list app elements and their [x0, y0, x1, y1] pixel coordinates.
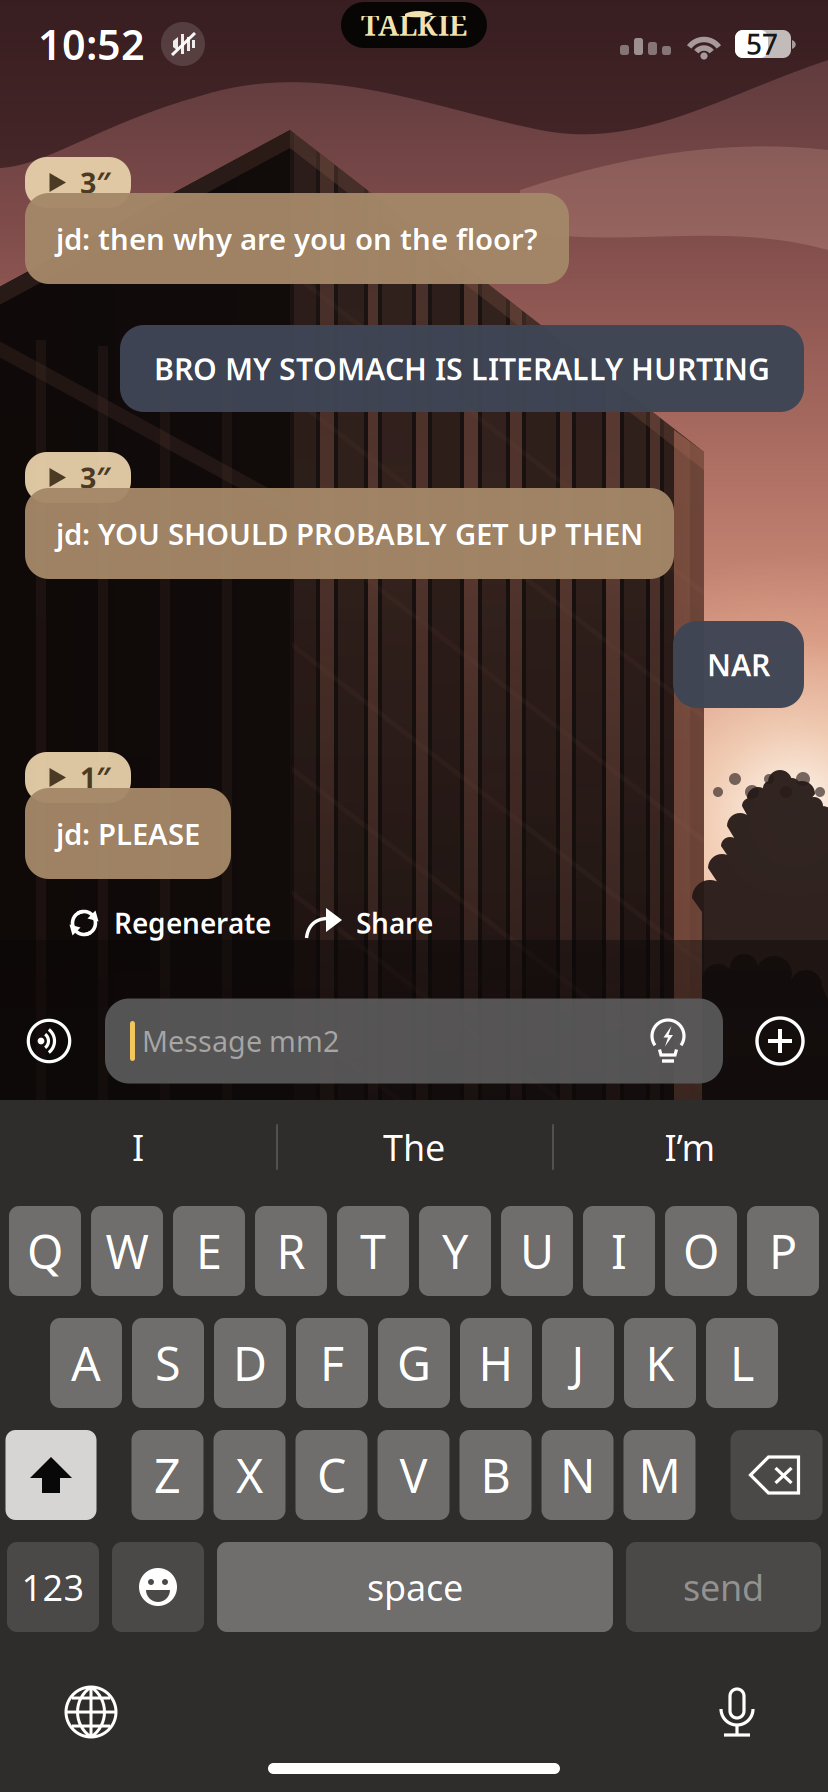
staticText: J: [571, 1332, 584, 1394]
button[interactable]: Shift: [5, 1430, 96, 1520]
button[interactable]: F: [296, 1318, 368, 1408]
button[interactable]: Y: [419, 1206, 491, 1296]
button[interactable]: Voice message: [25, 1017, 73, 1065]
staticText: D: [233, 1332, 267, 1394]
button[interactable]: Delete: [730, 1430, 822, 1520]
button[interactable]: C: [295, 1430, 367, 1520]
button[interactable]: H: [460, 1318, 532, 1408]
staticText: U: [520, 1220, 554, 1282]
staticText: Z: [154, 1444, 181, 1506]
button[interactable]: jd: PLEASE: [25, 788, 231, 879]
staticText: The: [383, 1123, 445, 1171]
button[interactable]: X: [213, 1430, 285, 1520]
staticText: NAR: [707, 644, 770, 685]
staticText: 3″: [80, 458, 111, 497]
button[interactable]: P: [747, 1206, 819, 1296]
button[interactable]: Regenerate: [66, 904, 271, 942]
staticText: B: [480, 1444, 510, 1506]
button[interactable]: Inspiration: [648, 1018, 688, 1064]
button[interactable]: T: [337, 1206, 409, 1296]
button[interactable]: L: [706, 1318, 778, 1408]
button[interactable]: U: [501, 1206, 573, 1296]
button[interactable]: I’m: [552, 1100, 828, 1194]
staticText: send: [683, 1563, 764, 1611]
staticText: Message mm2: [142, 1022, 339, 1060]
button[interactable]: G: [378, 1318, 450, 1408]
button[interactable]: BRO MY STOMACH IS LITERALLY HURTING: [120, 325, 804, 412]
staticText: jd: then why are you on the floor?: [56, 219, 538, 258]
staticText: N: [560, 1444, 595, 1506]
staticText: G: [397, 1332, 431, 1394]
staticText: I’m: [664, 1123, 715, 1171]
staticText: jd: PLEASE: [56, 814, 200, 853]
staticText: P: [769, 1220, 797, 1282]
staticText: L: [730, 1332, 754, 1394]
staticText: Regenerate: [114, 904, 271, 942]
staticText: X: [236, 1444, 263, 1506]
staticText: V: [399, 1444, 427, 1506]
button[interactable]: 3″: [25, 157, 131, 208]
button[interactable]: I: [0, 1100, 276, 1194]
staticText: 1″: [80, 758, 111, 797]
button[interactable]: space: [217, 1542, 613, 1632]
staticText: 3″: [80, 163, 111, 202]
staticText: 10:52: [38, 17, 145, 71]
staticText: Y: [442, 1220, 468, 1282]
button[interactable]: 3″: [25, 452, 131, 503]
button[interactable]: 123: [7, 1542, 99, 1632]
staticText: W: [105, 1220, 148, 1282]
button[interactable]: jd: then why are you on the floor?: [25, 193, 569, 284]
button[interactable]: O: [665, 1206, 737, 1296]
button[interactable]: D: [214, 1318, 286, 1408]
staticText: I: [611, 1220, 627, 1282]
button[interactable]: Emoji: [112, 1542, 204, 1632]
staticText: R: [276, 1220, 305, 1282]
staticText: C: [317, 1444, 346, 1506]
button[interactable]: jd: YOU SHOULD PROBABLY GET UP THEN: [25, 488, 674, 579]
staticText: E: [196, 1220, 222, 1282]
button[interactable]: Share: [304, 904, 433, 942]
staticText: I: [132, 1123, 144, 1171]
button[interactable]: Dictate: [718, 1683, 756, 1741]
button[interactable]: Next keyboard: [65, 1686, 117, 1738]
button[interactable]: 1″: [25, 752, 131, 803]
staticText: Q: [27, 1220, 63, 1282]
button[interactable]: NAR: [673, 621, 804, 708]
button[interactable]: send: [626, 1542, 821, 1632]
staticText: jd: YOU SHOULD PROBABLY GET UP THEN: [56, 514, 643, 553]
button[interactable]: R: [255, 1206, 327, 1296]
button[interactable]: Add attachment: [755, 1016, 805, 1066]
staticText: S: [155, 1332, 181, 1394]
button[interactable]: J: [542, 1318, 614, 1408]
button[interactable]: B: [459, 1430, 531, 1520]
button[interactable]: V: [377, 1430, 449, 1520]
button[interactable]: A: [50, 1318, 122, 1408]
button[interactable]: W: [91, 1206, 163, 1296]
button[interactable]: K: [624, 1318, 696, 1408]
button[interactable]: Z: [131, 1430, 203, 1520]
button[interactable]: S: [132, 1318, 204, 1408]
staticText: M: [638, 1444, 680, 1506]
staticText: 123: [21, 1563, 84, 1611]
staticText: TALKIE: [361, 6, 467, 44]
button[interactable]: The: [276, 1100, 552, 1194]
button[interactable]: M: [623, 1430, 695, 1520]
staticText: H: [478, 1332, 513, 1394]
staticText: A: [71, 1332, 101, 1394]
staticText: O: [683, 1220, 719, 1282]
staticText: Share: [356, 904, 433, 942]
staticText: K: [645, 1332, 674, 1394]
staticText: F: [320, 1332, 344, 1394]
button[interactable]: Q: [9, 1206, 81, 1296]
button[interactable]: I: [583, 1206, 655, 1296]
staticText: space: [367, 1563, 463, 1611]
staticText: 57: [746, 25, 778, 63]
button[interactable]: E: [173, 1206, 245, 1296]
staticText: BRO MY STOMACH IS LITERALLY HURTING: [154, 348, 770, 389]
button[interactable]: N: [541, 1430, 613, 1520]
staticText: T: [360, 1220, 386, 1282]
